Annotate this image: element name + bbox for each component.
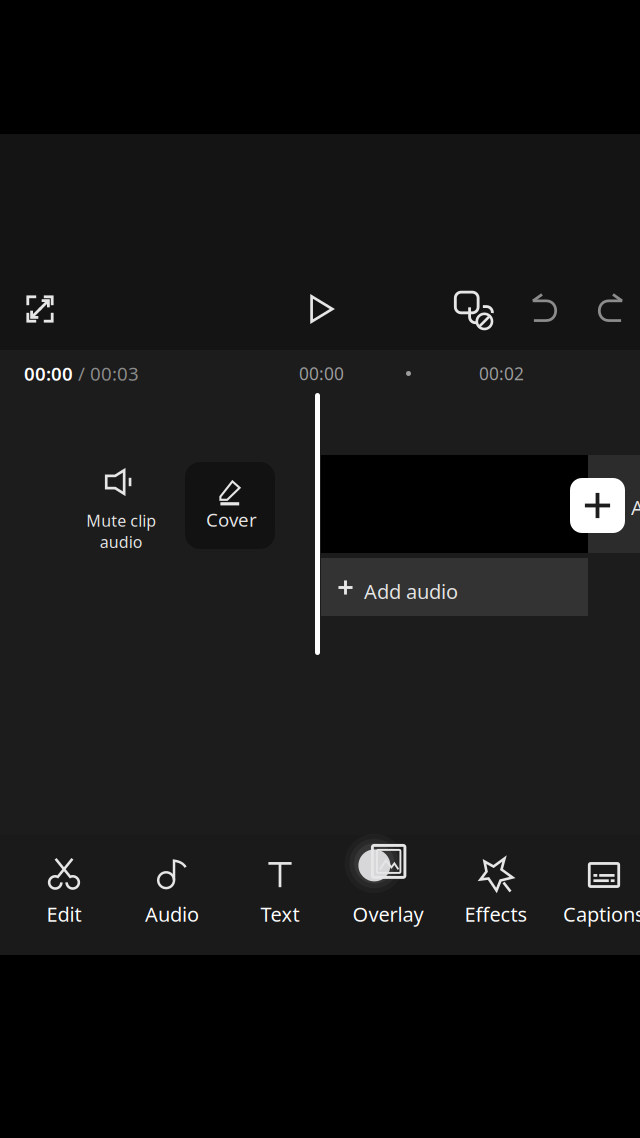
button[interactable]: Cover (185, 462, 275, 549)
button[interactable]: Edit (10, 835, 118, 955)
staticText: Mute clip audio (86, 510, 156, 552)
button[interactable]: Redo (595, 293, 624, 322)
staticText: 00:00 (24, 361, 73, 386)
button[interactable]: Add clip (570, 478, 625, 533)
button[interactable]: Undo (531, 293, 560, 322)
staticText: 00:02 (479, 362, 524, 385)
staticText: Audio (145, 901, 199, 927)
staticText: Edit (46, 901, 81, 927)
staticText: 00:03 (90, 361, 139, 386)
staticText: Text (260, 901, 299, 927)
button[interactable]: Play (294, 283, 346, 335)
staticText: Effects (464, 901, 527, 927)
staticText: Add audio (364, 578, 458, 605)
button[interactable]: Effects (442, 835, 550, 955)
staticText: 00:00 (299, 362, 344, 385)
button[interactable]: Captions (550, 835, 640, 955)
staticText: Captions (563, 901, 640, 927)
button[interactable]: Disable duplicate (454, 291, 492, 329)
button[interactable]: Text (226, 835, 334, 955)
button[interactable]: Overlay (334, 835, 442, 955)
staticText: / (73, 361, 90, 386)
button[interactable]: Mute clip audio (64, 462, 176, 552)
button[interactable]: Full screen (14, 283, 66, 335)
staticText: Overlay (352, 901, 423, 927)
button[interactable]: Audio (118, 835, 226, 955)
staticText: A (631, 494, 640, 521)
staticText: Cover (206, 507, 257, 532)
